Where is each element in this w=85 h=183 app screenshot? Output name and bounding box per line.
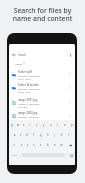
- button[interactable]: Back: [9, 48, 75, 62]
- staticText: g: [40, 133, 42, 137]
- staticText: k: [61, 133, 63, 137]
- staticText: Storage • Yesterday: [18, 74, 40, 77]
- button[interactable]: l: [65, 132, 72, 138]
- button[interactable]: w: [15, 122, 21, 128]
- staticText: Storage • Yesterday: [18, 87, 40, 90]
- button[interactable]: t: [33, 122, 40, 128]
- staticText: z: [21, 143, 23, 147]
- staticText: Images • Yesterday: [18, 102, 40, 105]
- button[interactable]: z: [19, 142, 25, 148]
- staticText: w: [17, 123, 20, 127]
- staticText: ?123: [12, 154, 17, 157]
- staticText: b: [47, 143, 49, 147]
- staticText: ,: [20, 153, 21, 157]
- button[interactable]: q: [9, 122, 15, 128]
- button[interactable]: p: [68, 122, 75, 128]
- staticText: u: [50, 123, 52, 127]
- staticText: o: [64, 123, 66, 127]
- button[interactable]: Folder 42 by date: [9, 81, 75, 94]
- staticText: a: [14, 133, 16, 137]
- button[interactable]: m: [58, 142, 65, 148]
- staticText: i: [57, 123, 58, 127]
- staticText: x: [27, 143, 29, 147]
- button[interactable]: d: [24, 132, 30, 138]
- staticText: f: [33, 133, 34, 137]
- button[interactable]: image_0002.jpg: [9, 109, 75, 122]
- staticText: Folder 42 by date: [18, 83, 40, 87]
- button[interactable]: More options: [67, 113, 72, 118]
- button[interactable]: e: [21, 122, 27, 128]
- button[interactable]: Name: [15, 61, 25, 65]
- staticText: Oct 8, 2019: [18, 90, 31, 93]
- staticText: Images • Yesterday: [18, 115, 40, 118]
- button[interactable]: b: [44, 142, 51, 148]
- button[interactable]: Shift: [9, 142, 19, 148]
- staticText: Folder stuff: [18, 70, 32, 74]
- button[interactable]: r: [27, 122, 33, 128]
- staticText: Name: [15, 62, 22, 65]
- staticText: Search: [18, 53, 27, 57]
- button[interactable]: More options: [67, 100, 72, 105]
- staticText: t: [36, 123, 37, 127]
- button[interactable]: ,: [18, 152, 22, 158]
- staticText: m: [60, 143, 63, 147]
- button[interactable]: a: [12, 132, 18, 138]
- button[interactable]: j: [51, 132, 58, 138]
- staticText: e: [23, 123, 25, 127]
- staticText: Search for files by name and content: [0, 6, 85, 23]
- staticText: .: [67, 153, 68, 157]
- other: Back: [12, 53, 16, 57]
- staticText: v: [40, 143, 42, 147]
- button[interactable]: Folder stuff: [9, 68, 75, 81]
- button[interactable]: n: [51, 142, 58, 148]
- button[interactable]: c: [31, 142, 37, 148]
- other: Clear search: [69, 54, 72, 57]
- button[interactable]: More options: [67, 85, 72, 90]
- button[interactable]: Backspace: [65, 142, 75, 148]
- staticText: c: [33, 143, 35, 147]
- button[interactable]: .: [65, 152, 69, 158]
- staticText: d: [26, 133, 28, 137]
- staticText: q: [11, 123, 13, 127]
- button[interactable]: g: [37, 132, 44, 138]
- staticText: j: [54, 133, 55, 137]
- button[interactable]: x: [25, 142, 31, 148]
- button[interactable]: ?123: [10, 152, 18, 158]
- staticText: p: [71, 123, 73, 127]
- staticText: image_0002.jpg: [18, 111, 38, 115]
- staticText: 1.80 MB: [18, 118, 28, 121]
- staticText: image_0001.jpg: [18, 98, 38, 102]
- staticText: n: [54, 143, 56, 147]
- button[interactable]: k: [58, 132, 65, 138]
- staticText: Oct 9, 2019: [18, 77, 31, 80]
- button[interactable]: u: [47, 122, 54, 128]
- button[interactable]: h: [44, 132, 51, 138]
- staticText: s: [20, 133, 22, 137]
- button[interactable]: i: [54, 122, 61, 128]
- button[interactable]: f: [30, 132, 37, 138]
- staticText: r: [29, 123, 31, 127]
- button[interactable]: More options: [67, 72, 72, 77]
- button[interactable]: y: [40, 122, 47, 128]
- staticText: h: [47, 133, 49, 137]
- staticText: 2.45 MB: [18, 105, 28, 108]
- button[interactable]: image_0001.jpg: [9, 96, 75, 109]
- staticText: y: [43, 123, 45, 127]
- button[interactable]: Search: [69, 153, 74, 158]
- staticText: l: [68, 133, 69, 137]
- button[interactable]: s: [18, 132, 24, 138]
- button[interactable]: o: [61, 122, 68, 128]
- button[interactable]: v: [37, 142, 44, 148]
